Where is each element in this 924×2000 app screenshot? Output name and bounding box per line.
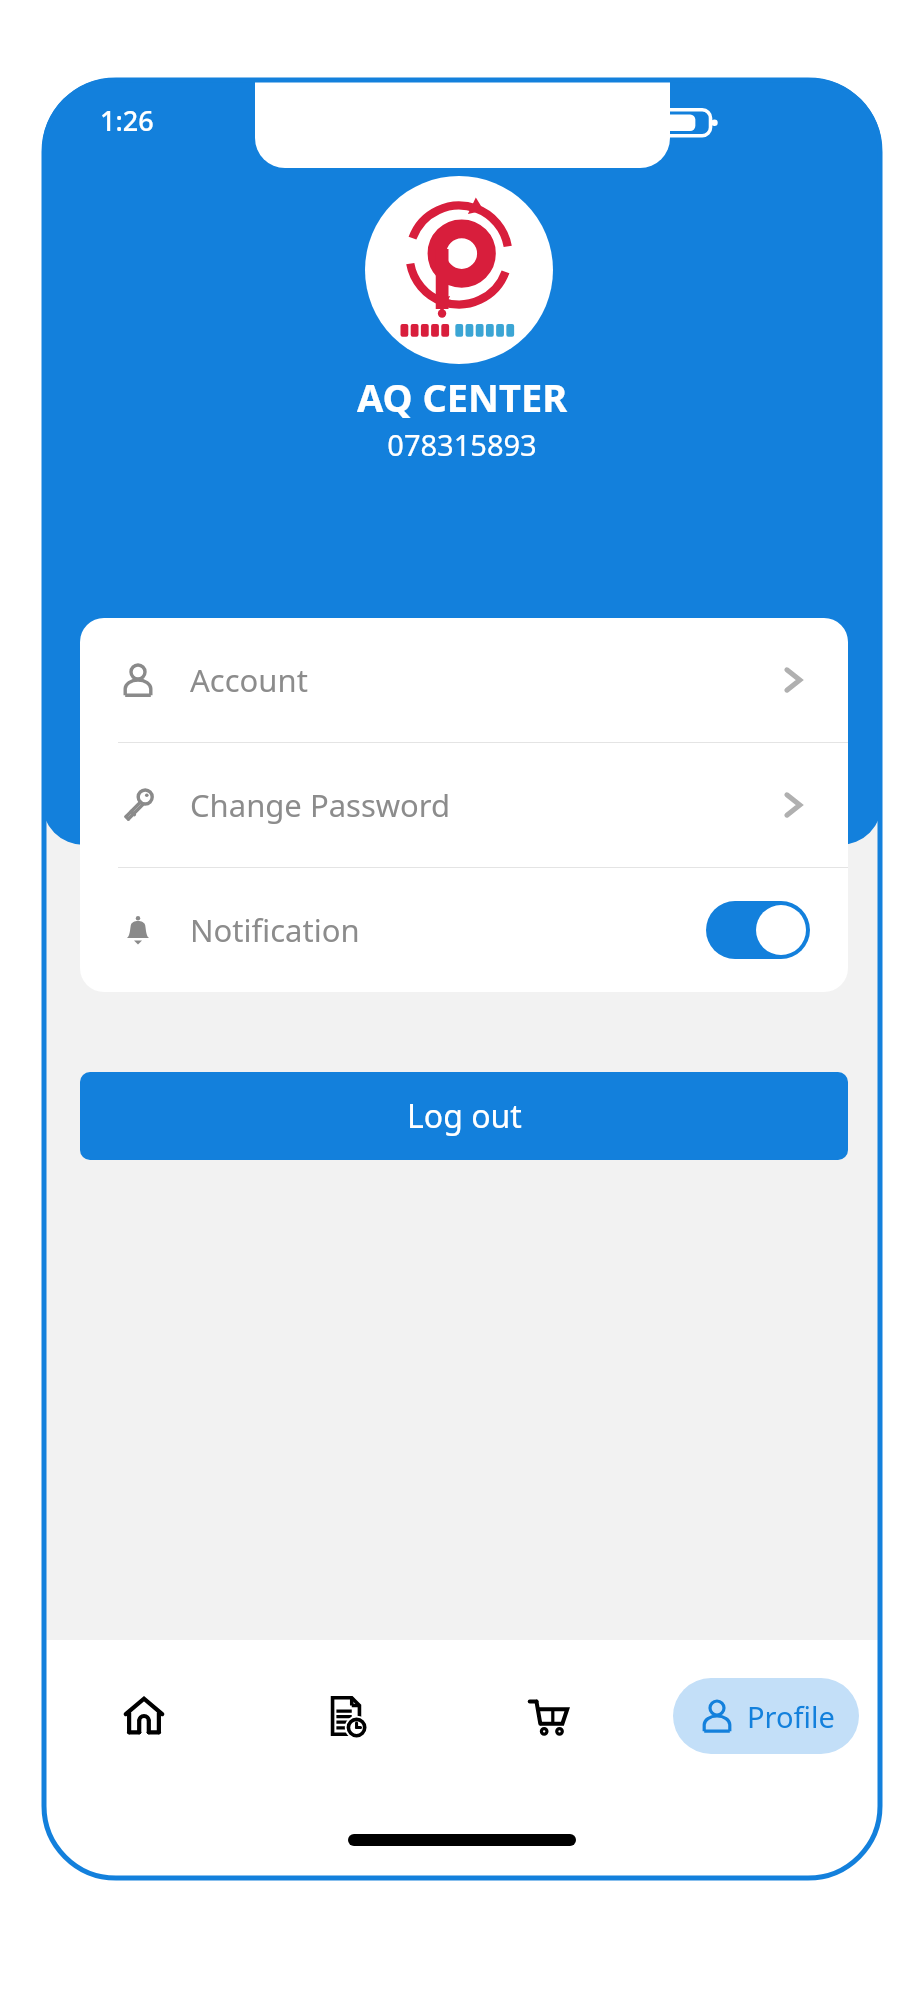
- button[interactable]: Orders: [245, 1668, 447, 1764]
- button[interactable]: Profile: [673, 1678, 859, 1754]
- button[interactable]: Log out: [80, 1072, 848, 1160]
- button[interactable]: Account: [80, 618, 848, 742]
- staticText: Change Password: [190, 784, 776, 826]
- button[interactable]: Notification: [80, 868, 848, 992]
- staticText: 078315893: [42, 425, 882, 464]
- staticText: Notification: [190, 909, 706, 951]
- button[interactable]: Notification toggle: [706, 901, 810, 959]
- button[interactable]: Cart: [447, 1668, 649, 1764]
- button[interactable]: Home: [42, 1668, 245, 1764]
- staticText: Log out: [407, 1094, 522, 1138]
- button[interactable]: Change Password: [80, 743, 848, 867]
- staticText: 1:26: [100, 102, 154, 139]
- staticText: Profile: [747, 1697, 835, 1736]
- staticText: Account: [190, 659, 776, 701]
- staticText: AQ CENTER: [42, 371, 882, 423]
